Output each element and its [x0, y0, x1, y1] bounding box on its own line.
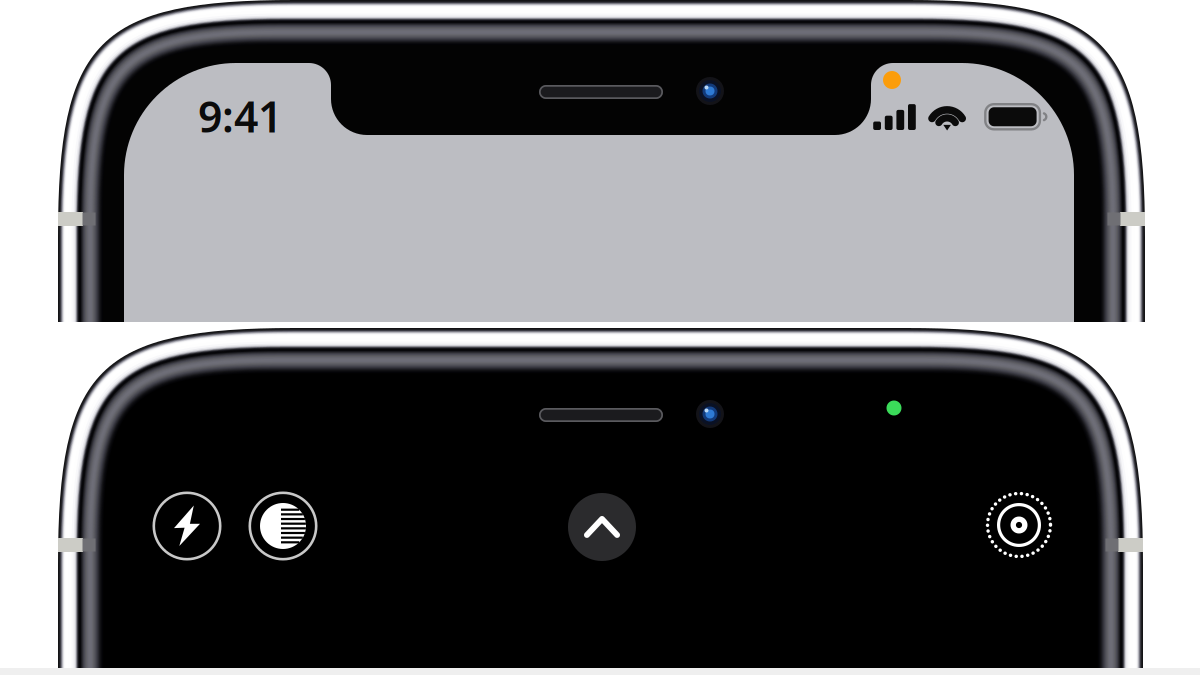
- button[interactable]: 9:41: [198, 88, 282, 144]
- button[interactable]: Flash: [152, 491, 221, 560]
- button[interactable]: Live Photo: [985, 491, 1053, 559]
- button[interactable]: Night mode: [248, 491, 317, 560]
- button[interactable]: More camera controls: [568, 493, 636, 561]
- staticText: 9:41: [198, 88, 282, 144]
